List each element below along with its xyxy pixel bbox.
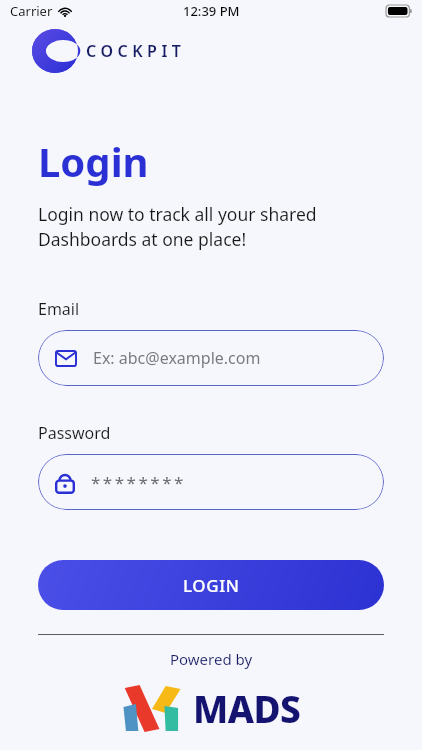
staticText: ********	[91, 471, 186, 494]
staticText: Login	[38, 134, 149, 188]
staticText: Login now to track all your shared Dashb…	[38, 202, 317, 252]
staticText: 12:39 PM	[183, 2, 240, 20]
staticText: LOGIN	[183, 574, 240, 597]
staticText: Ex: abc@example.com	[93, 347, 261, 369]
button[interactable]: Email	[38, 330, 384, 386]
staticText: Powered by	[0, 649, 422, 669]
staticText: Carrier	[10, 2, 53, 20]
staticText: Email	[38, 298, 80, 320]
button[interactable]: LOGIN	[38, 560, 384, 610]
staticText: MADS	[193, 683, 301, 733]
staticText: Password	[38, 422, 111, 444]
staticText: COCKPIT	[86, 40, 186, 62]
button[interactable]: Password	[38, 454, 384, 510]
